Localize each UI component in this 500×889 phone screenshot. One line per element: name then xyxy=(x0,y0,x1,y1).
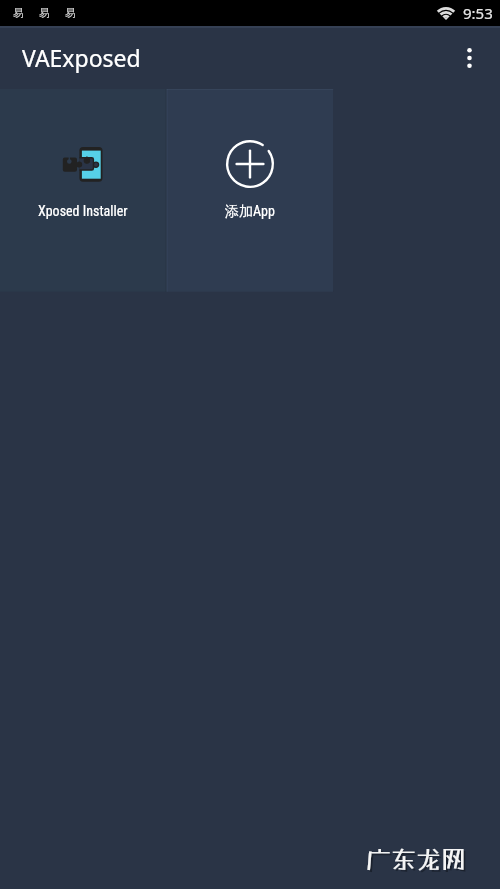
staticText: Xposed Installer xyxy=(38,203,128,219)
staticText: 易 xyxy=(65,6,76,20)
button[interactable]: Xposed Installer xyxy=(0,89,166,292)
staticText: 易 xyxy=(13,6,24,20)
staticText: 9:53 xyxy=(463,3,493,23)
staticText: 广东龙网 xyxy=(366,844,467,873)
button[interactable]: More options xyxy=(445,34,493,82)
button[interactable]: 添加App xyxy=(166,89,333,292)
staticText: 添加App xyxy=(225,203,275,221)
staticText: 易 xyxy=(39,6,50,20)
staticText: VAExposed xyxy=(22,42,141,73)
staticText: 广东龙网 xyxy=(368,846,469,875)
